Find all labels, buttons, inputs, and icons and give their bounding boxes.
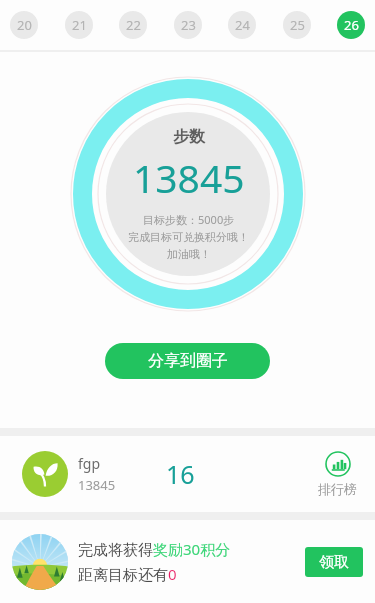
staticText: 23: [181, 16, 196, 34]
staticText: 加油哦！: [167, 247, 211, 261]
staticText: 25: [290, 16, 305, 34]
staticText: 领取: [319, 553, 349, 572]
button[interactable]: 分享到圈子: [105, 343, 270, 379]
staticText: 步数: [173, 127, 205, 147]
staticText: 排行榜: [318, 481, 357, 497]
button[interactable]: Reward scene: [12, 534, 68, 590]
button[interactable]: 领取: [305, 547, 363, 577]
button[interactable]: 25: [283, 11, 311, 39]
button[interactable]: 排行榜: [300, 451, 375, 497]
staticText: 分享到圈子: [148, 351, 228, 371]
staticText: 目标步数：5000步: [143, 212, 235, 227]
button[interactable]: 23: [174, 11, 202, 39]
button[interactable]: 26: [337, 11, 365, 39]
staticText: 26: [344, 16, 359, 34]
staticText: 距离目标还有0: [78, 564, 177, 584]
staticText: 20: [17, 16, 32, 34]
staticText: 24: [235, 16, 250, 34]
staticText: 16: [166, 457, 195, 491]
button[interactable]: User avatar: [22, 451, 68, 497]
staticText: 21: [72, 16, 87, 34]
staticText: 22: [126, 16, 141, 34]
button[interactable]: 21: [65, 11, 93, 39]
staticText: 完成将获得奖励30积分: [78, 539, 231, 559]
staticText: 13845: [133, 151, 245, 204]
staticText: 13845: [78, 476, 116, 494]
button[interactable]: 24: [228, 11, 256, 39]
staticText: fgp: [78, 454, 101, 473]
button[interactable]: 20: [10, 11, 38, 39]
staticText: 完成目标可兑换积分哦！: [128, 230, 249, 244]
button[interactable]: 22: [119, 11, 147, 39]
